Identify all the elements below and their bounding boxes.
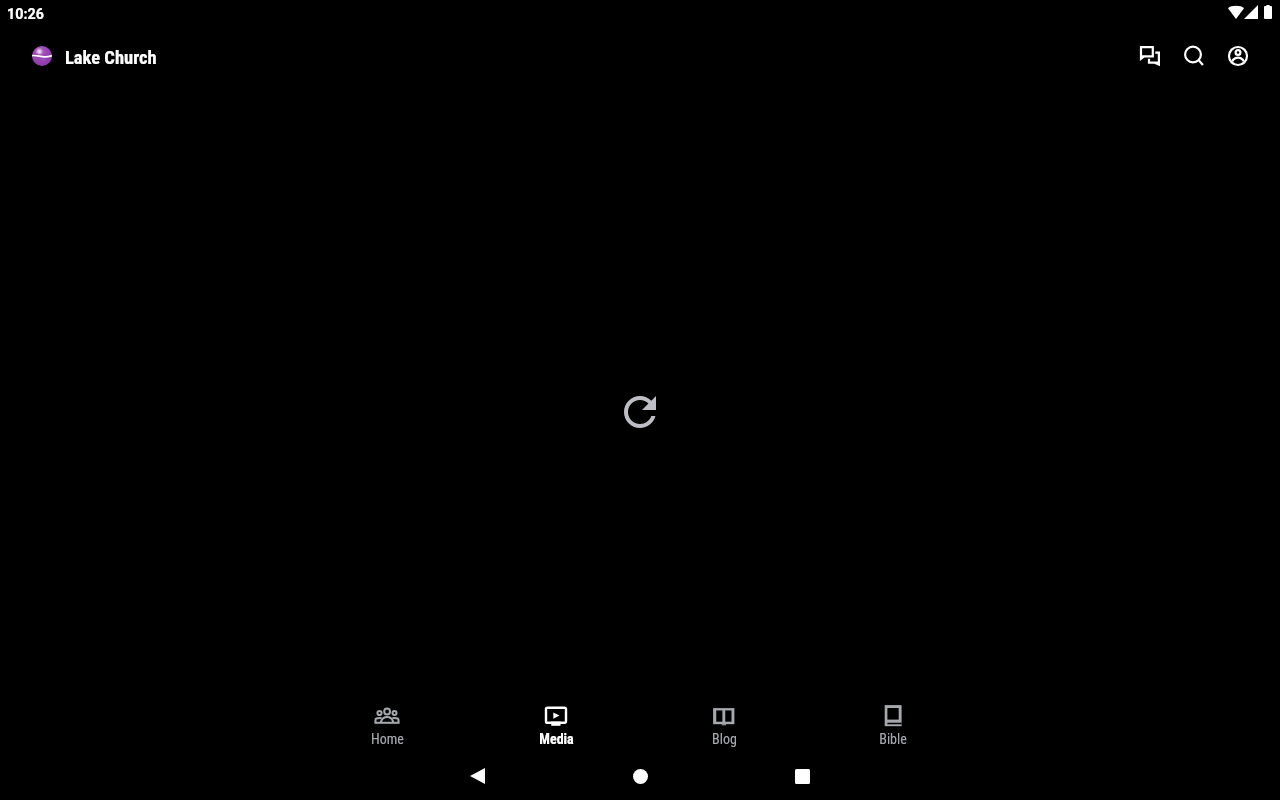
- button[interactable]: Home: [343, 698, 431, 750]
- button[interactable]: Back: [455, 754, 499, 798]
- staticText: Blog: [712, 731, 737, 747]
- staticText: 10:26: [7, 6, 44, 23]
- button[interactable]: Bible: [849, 698, 937, 750]
- staticText: Media: [539, 731, 574, 747]
- staticText: Bible: [879, 731, 907, 747]
- button[interactable]: Media: [512, 698, 600, 750]
- staticText: Home: [371, 731, 404, 747]
- button[interactable]: Home: [618, 754, 662, 798]
- button[interactable]: Recents: [780, 754, 824, 798]
- button[interactable]: Messages: [1130, 36, 1170, 76]
- button[interactable]: Search: [1174, 36, 1214, 76]
- button[interactable]: Account: [1218, 36, 1258, 76]
- button[interactable]: Blog: [680, 698, 768, 750]
- staticText: Lake Church: [65, 47, 157, 69]
